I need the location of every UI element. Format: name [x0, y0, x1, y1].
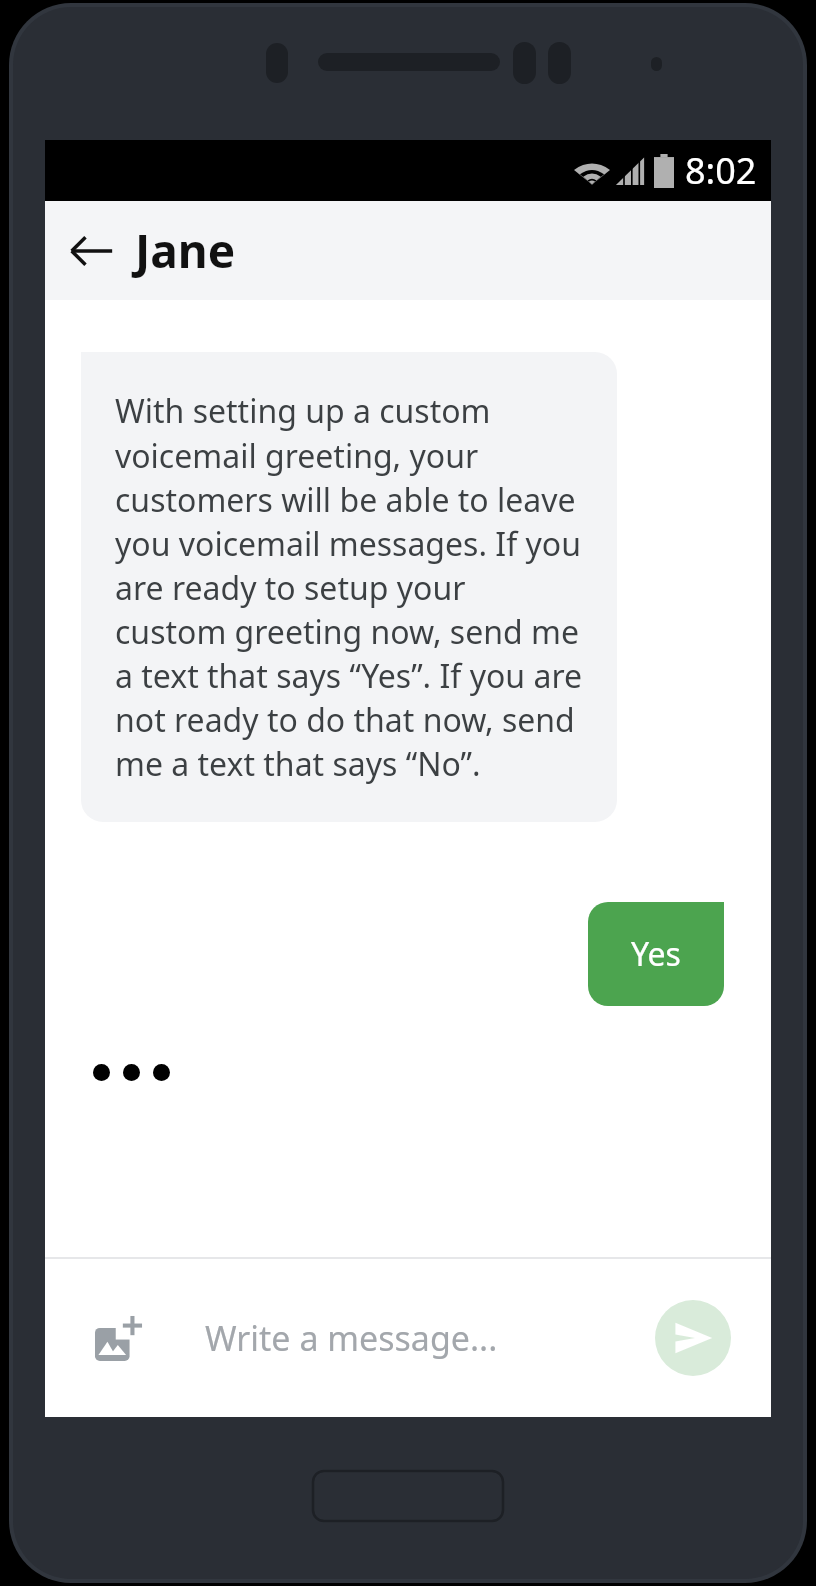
button[interactable]: Yes: [588, 902, 724, 1006]
button[interactable]: Back: [65, 225, 117, 277]
button[interactable]: Send: [655, 1300, 731, 1376]
button[interactable]: Write a message...: [205, 1315, 655, 1361]
staticText: Yes: [631, 932, 681, 976]
staticText: Jane: [135, 219, 236, 282]
button[interactable]: Add image: [77, 1296, 161, 1380]
staticText: Write a message...: [205, 1315, 498, 1361]
staticText: 8:02: [685, 146, 757, 195]
button[interactable]: With setting up a custom voicemail greet…: [81, 352, 617, 822]
staticText: With setting up a custom voicemail greet…: [115, 389, 583, 785]
